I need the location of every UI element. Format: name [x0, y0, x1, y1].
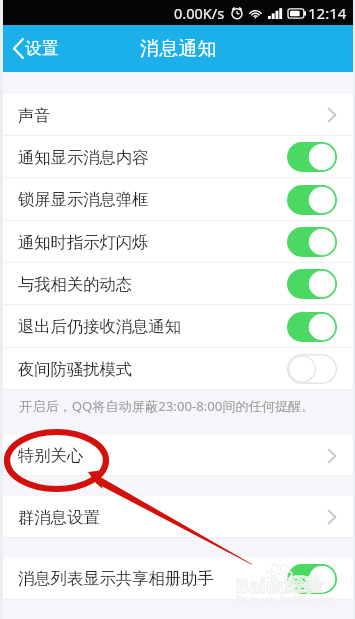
staticText: 声音: [18, 105, 51, 126]
staticText: 锁屏显示消息弹框: [18, 189, 149, 210]
button[interactable]: 锁屏显示消息弹框 开: [287, 185, 337, 215]
button[interactable]: 特别关心: [3, 435, 353, 476]
button[interactable]: 退出后仍接收消息通知: [3, 305, 353, 348]
button[interactable]: 通知时指示灯闪烁: [3, 221, 353, 263]
staticText: 经验: [287, 574, 323, 597]
button[interactable]: 通知显示消息内容 开: [287, 142, 337, 172]
staticText: 消息通知: [140, 37, 217, 61]
staticText: 开启后，QQ将自动屏蔽23:00-8:00间的任何提醒。: [19, 397, 315, 415]
button[interactable]: 退出后仍接收消息通知 开: [287, 312, 337, 342]
staticText: Baidu: [236, 573, 291, 599]
staticText: 设置: [25, 38, 58, 59]
button[interactable]: 通知显示消息内容: [3, 136, 353, 178]
staticText: 与我相关的动态: [18, 274, 133, 295]
staticText: jingyan.baidu.com: [236, 592, 338, 607]
staticText: 12:14: [308, 3, 347, 23]
button[interactable]: 群消息设置: [3, 496, 353, 538]
button[interactable]: 设置: [12, 38, 58, 59]
button[interactable]: 夜间防骚扰模式: [3, 348, 353, 390]
button[interactable]: 夜间防骚扰模式 关: [287, 354, 337, 384]
button[interactable]: 消息列表显示共享相册助手: [3, 557, 353, 600]
staticText: 群消息设置: [18, 507, 100, 528]
staticText: 消息列表显示共享相册助手: [18, 568, 214, 589]
staticText: 退出后仍接收消息通知: [18, 316, 181, 337]
button[interactable]: 消息列表显示共享相册助手 开: [287, 564, 337, 594]
button[interactable]: 锁屏显示消息弹框: [3, 178, 353, 221]
staticText: 通知显示消息内容: [18, 147, 149, 168]
button[interactable]: 与我相关的动态 开: [287, 269, 337, 299]
staticText: 夜间防骚扰模式: [18, 359, 133, 380]
staticText: 通知时指示灯闪烁: [18, 232, 149, 253]
button[interactable]: 通知时指示灯闪烁 开: [287, 227, 337, 257]
staticText: 0.00K/s: [174, 3, 225, 23]
button[interactable]: 与我相关的动态: [3, 263, 353, 305]
button[interactable]: 声音: [3, 94, 353, 136]
staticText: 特别关心: [18, 445, 84, 466]
